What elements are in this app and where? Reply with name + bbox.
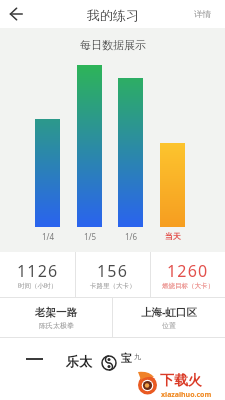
staticText: 我的练习	[87, 7, 139, 23]
staticText: 当天	[159, 231, 187, 241]
button[interactable]: 156	[76, 252, 150, 297]
staticText: 1/5	[76, 231, 104, 242]
staticText: 上海-虹口区	[141, 305, 197, 319]
staticText: 乐太	[66, 353, 92, 369]
staticText: 1126	[17, 260, 59, 282]
button[interactable]	[0, 0, 28, 28]
staticText: 燃烧目标（大卡）	[162, 282, 214, 290]
button[interactable]: 老架一路	[0, 298, 112, 337]
staticText: xiazaihuo.com	[161, 390, 212, 400]
staticText: 1/4	[34, 231, 62, 242]
staticText: 位置	[162, 321, 176, 330]
staticText: 卡路里（大卡）	[90, 282, 136, 290]
staticText: 陈氏太极拳	[39, 321, 74, 330]
staticText: 1260	[167, 260, 209, 282]
staticText: 1/6	[117, 231, 145, 242]
staticText: 宝	[121, 351, 132, 365]
button[interactable]: 1260	[151, 252, 225, 297]
staticText: 老架一路	[35, 306, 77, 319]
staticText: 每日数据展示	[80, 38, 146, 52]
staticText: 九	[134, 352, 141, 361]
staticText: 详情	[194, 9, 211, 20]
staticText: 156	[97, 260, 129, 282]
button[interactable]: 1126	[0, 252, 75, 297]
button[interactable]: 上海-虹口区	[113, 298, 225, 337]
staticText: 时间（小时）	[18, 282, 57, 290]
staticText: 下载火	[160, 372, 202, 390]
button[interactable]: 详情	[186, 3, 225, 26]
